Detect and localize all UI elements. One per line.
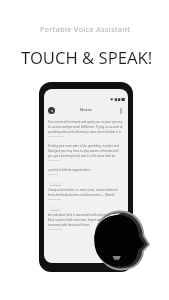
staticText: Yesterday: [48, 173, 58, 176]
button[interactable]: Your vision will motivate and guide you …: [44, 118, 128, 142]
button[interactable]: Account: [39, 82, 133, 272]
button[interactable]: Finding your auto state is like gambling…: [44, 142, 128, 166]
button[interactable]: a world of infinite opportunities: [44, 166, 128, 180]
staticText: 4 minutes ago: [48, 135, 63, 138]
button[interactable]: Cooking: [44, 205, 128, 235]
button[interactable]: Account: [48, 107, 55, 114]
staticText: 3 months ago: [48, 228, 63, 231]
staticText: Shopping: [50, 183, 61, 186]
staticText: Portable Voice Assistant: [40, 25, 131, 35]
staticText: a world of infinite opportunities: [48, 168, 91, 172]
staticText: Your vision will motivate and guide you …: [48, 120, 124, 134]
staticText: TOUCH & SPEAK!: [21, 46, 153, 69]
staticText: Cheap airline tickets, in most cases, ca…: [48, 188, 124, 197]
staticText: Notes: [80, 107, 92, 113]
button[interactable]: Shopping: [44, 180, 128, 205]
staticText: Cooking: [50, 208, 60, 211]
staticText: 2 hours ago: [48, 159, 61, 162]
button[interactable]: More options: [117, 107, 124, 114]
staticText: Finding your auto state is like gambling…: [48, 144, 124, 158]
staticText: 2 weeks ago: [48, 198, 61, 201]
button[interactable]: Voice assistant device: [94, 210, 151, 271]
staticText: An individual herb is associated with a …: [48, 213, 124, 227]
